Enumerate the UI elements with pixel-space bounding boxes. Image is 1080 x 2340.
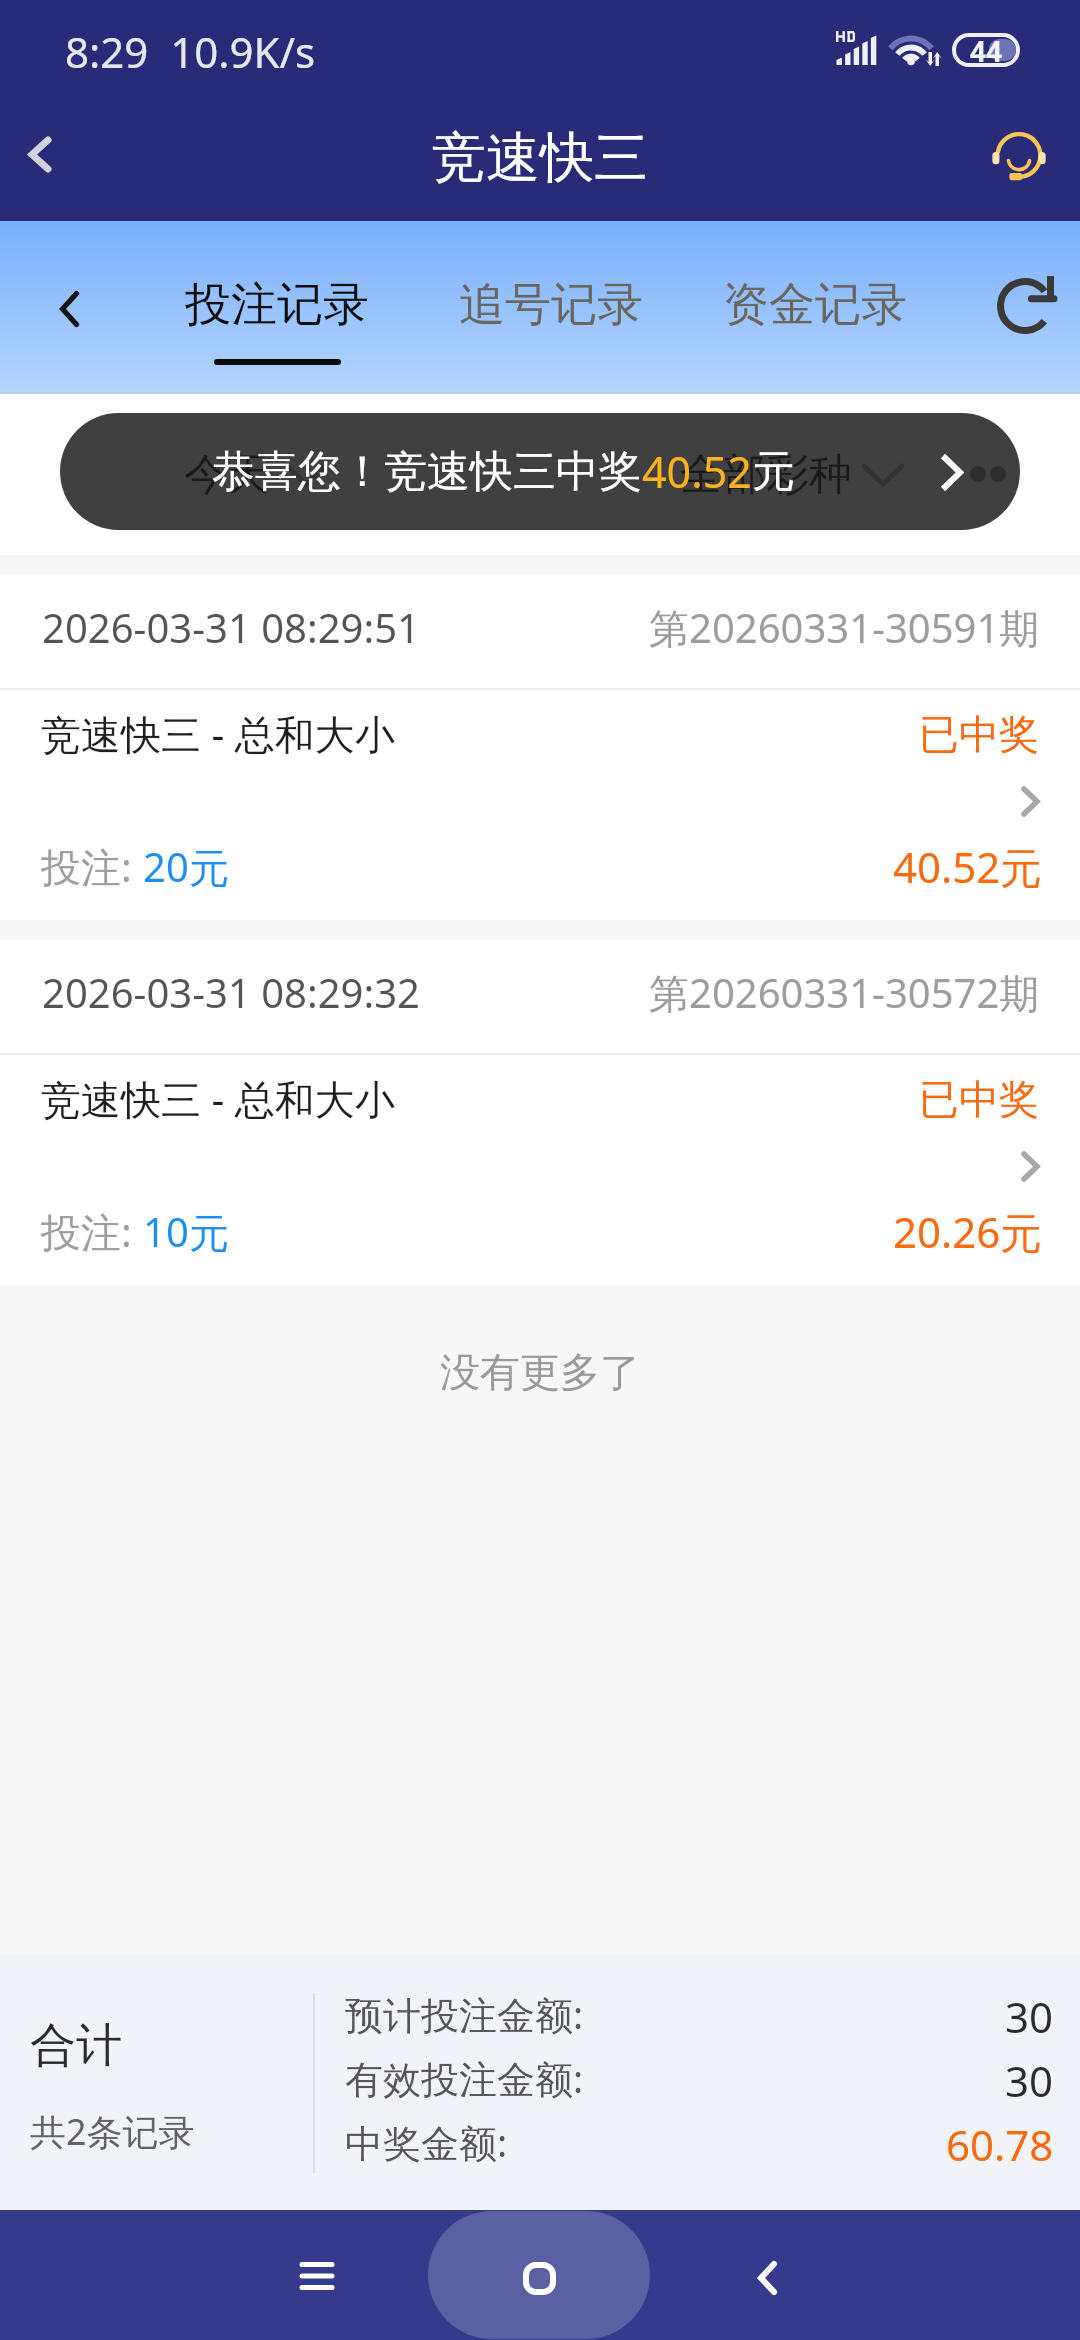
staticText: 60.78 — [946, 2116, 1054, 2173]
button[interactable]: Back — [24, 259, 116, 359]
button[interactable]: 投注记录 — [177, 255, 377, 355]
staticText: 竞速快三 - 总和大小 — [41, 1071, 395, 1126]
staticText: 全部彩种 — [680, 448, 852, 502]
button[interactable]: More options — [940, 424, 1050, 524]
staticText: 今天 — [184, 448, 270, 502]
button[interactable]: 今天 — [180, 404, 341, 544]
staticText: 2026-03-31 08:29:51 — [42, 600, 420, 654]
staticText: 追号记录 — [459, 276, 643, 334]
staticText: 有效投注金额: — [345, 2052, 584, 2104]
staticText: 40.52元 — [893, 838, 1043, 895]
staticText: 投注: — [41, 839, 143, 894]
button[interactable]: 全部彩种 — [676, 404, 918, 544]
staticText: 投注记录 — [185, 276, 369, 334]
staticText: 2026-03-31 08:29:32 — [42, 965, 420, 1019]
button[interactable]: Refresh — [975, 256, 1075, 356]
staticText: 合计 — [30, 2017, 122, 2075]
button[interactable]: 追号记录 — [451, 255, 651, 355]
staticText: 预计投注金额: — [345, 1988, 584, 2040]
staticText: 8:29 10.9K/s — [65, 23, 316, 80]
staticText: 元 — [752, 445, 795, 499]
button[interactable]: Back — [707, 2226, 827, 2330]
staticText: 20元 — [143, 839, 229, 894]
staticText: 投注: — [41, 1204, 143, 1259]
staticText: 共2条记录 — [30, 2107, 195, 2156]
button[interactable]: 资金记录 — [715, 255, 915, 355]
staticText: 第20260331-30572期 — [649, 965, 1040, 1020]
staticText: 第20260331-30591期 — [649, 600, 1040, 655]
button[interactable]: Back — [0, 100, 96, 221]
staticText: 竞速快三 — [432, 124, 648, 192]
staticText: 40.52 — [642, 442, 752, 501]
staticText: 30 — [1005, 2052, 1054, 2109]
button[interactable]: Home — [479, 2226, 599, 2330]
staticText: 资金记录 — [723, 276, 907, 334]
staticText: 10元 — [143, 1204, 229, 1259]
staticText: 恭喜您！竞速快三中奖 — [212, 445, 642, 499]
staticText: 竞速快三 - 总和大小 — [41, 706, 395, 761]
button[interactable]: Customer service — [971, 113, 1067, 209]
staticText: 已中奖 — [919, 709, 1039, 759]
staticText: 20.26元 — [893, 1203, 1043, 1260]
staticText: 44 — [970, 32, 1003, 66]
button[interactable]: Recents — [257, 2224, 377, 2328]
staticText: 30 — [1005, 1988, 1054, 2045]
staticText: 已中奖 — [919, 1074, 1039, 1124]
staticText: 中奖金额: — [345, 2116, 508, 2168]
staticText: 没有更多了 — [440, 1347, 640, 1397]
button[interactable]: 竞速快三 - 总和大小 — [0, 690, 1080, 920]
button[interactable]: 竞速快三 - 总和大小 — [0, 1055, 1080, 1285]
